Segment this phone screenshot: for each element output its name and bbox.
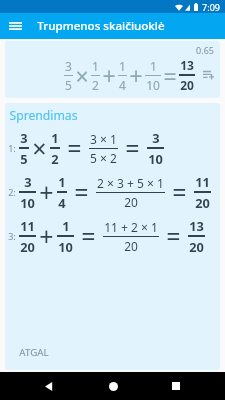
staticText: 1: [150, 58, 157, 74]
staticText: 4: [119, 77, 126, 93]
staticText: 5 × 2: [90, 150, 117, 166]
staticText: 20: [189, 238, 204, 255]
staticText: 1:: [8, 142, 16, 154]
staticText: =: [81, 219, 96, 253]
staticText: 2: [92, 77, 99, 93]
staticText: 3 × 1: [90, 131, 117, 147]
staticText: 5: [20, 150, 28, 167]
button[interactable]: Menu: [5, 16, 25, 36]
staticText: 3: [24, 173, 32, 190]
staticText: 3: [65, 58, 72, 74]
staticText: 1: [119, 58, 126, 74]
staticText: 1: [62, 217, 70, 234]
staticText: =: [67, 131, 82, 165]
staticText: 2: [51, 150, 59, 167]
staticText: 20: [124, 238, 138, 254]
staticText: Sprendimas: [9, 107, 78, 124]
button[interactable]: Back: [38, 375, 60, 397]
staticText: 11: [20, 217, 35, 234]
staticText: =: [163, 60, 177, 91]
button[interactable]: Recents: [165, 375, 187, 397]
staticText: 10: [146, 77, 160, 93]
staticText: =: [172, 175, 187, 209]
staticText: +: [102, 60, 116, 91]
staticText: 3: [152, 129, 160, 146]
staticText: 13: [189, 217, 204, 234]
staticText: ×: [32, 131, 47, 165]
staticText: 2:: [8, 186, 16, 198]
staticText: 1: [51, 129, 59, 146]
staticText: =: [166, 219, 181, 253]
staticText: +: [129, 60, 143, 91]
staticText: 20: [20, 238, 35, 255]
button[interactable]: ATGAL: [15, 343, 53, 362]
staticText: ×: [75, 60, 89, 91]
staticText: +: [39, 219, 54, 253]
staticText: 10: [58, 238, 73, 255]
staticText: =: [74, 175, 89, 209]
staticText: 3: [20, 129, 28, 146]
staticText: 1: [58, 173, 66, 190]
staticText: +: [39, 175, 54, 209]
staticText: 0.65: [196, 44, 214, 56]
staticText: 11 + 2 × 1: [104, 219, 158, 235]
staticText: 13: [180, 57, 194, 73]
staticText: 4: [58, 194, 66, 211]
staticText: 2 × 3 + 5 × 1: [97, 175, 164, 191]
staticText: 10: [20, 194, 35, 211]
staticText: 1: [92, 58, 99, 74]
button[interactable]: 0.65: [5, 41, 220, 98]
staticText: 7:09: [202, 1, 220, 13]
staticText: 11: [195, 173, 210, 190]
staticText: 20: [195, 194, 210, 211]
staticText: ATGAL: [19, 346, 49, 359]
staticText: 20: [124, 194, 138, 210]
staticText: 10: [148, 150, 163, 167]
staticText: =: [125, 131, 140, 165]
staticText: 5: [65, 77, 72, 93]
button[interactable]: Add to list: [201, 68, 215, 82]
button[interactable]: Home: [102, 375, 124, 397]
staticText: 3:: [8, 230, 16, 242]
staticText: Trupmenos skaičiuoklė: [37, 18, 165, 34]
staticText: 20: [180, 77, 194, 93]
